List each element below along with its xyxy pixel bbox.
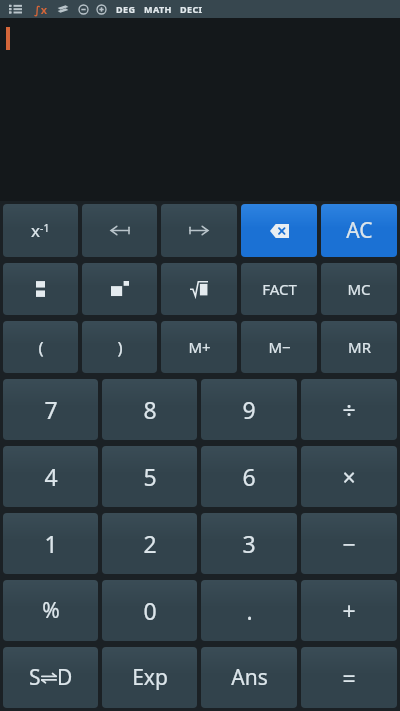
staticText: Ans (231, 663, 268, 692)
staticText: × (342, 461, 356, 492)
button[interactable]: Ans (201, 647, 297, 708)
button[interactable]: 2 (102, 513, 197, 574)
staticText: 2 (143, 528, 157, 559)
button[interactable]: Divide (301, 379, 397, 440)
button[interactable]: 6 (201, 446, 297, 507)
button[interactable]: Swap (54, 0, 72, 18)
staticText: MATH (144, 3, 172, 15)
button[interactable]: 4 (3, 446, 98, 507)
button[interactable]: 3 (201, 513, 297, 574)
button[interactable]: DEG (115, 3, 137, 15)
staticText: M+ (188, 337, 211, 357)
button[interactable]: History (5, 0, 25, 18)
staticText: Exp (132, 663, 168, 692)
staticText: ÷ (342, 394, 356, 425)
staticText: . (246, 595, 253, 626)
staticText: 5 (143, 461, 157, 492)
button[interactable] (0, 18, 400, 201)
staticText: 6 (242, 461, 256, 492)
button[interactable]: Zoom in (93, 1, 109, 17)
staticText: 1 (44, 528, 58, 559)
button[interactable]: 1 (3, 513, 98, 574)
button[interactable]: 8 (102, 379, 197, 440)
staticText: x-1 (31, 219, 50, 242)
button[interactable]: x⁻¹ (3, 204, 78, 257)
button[interactable]: AC (321, 204, 397, 257)
button[interactable]: FACT (241, 263, 317, 315)
button[interactable]: Root (161, 263, 237, 315)
button[interactable]: Functions (32, 0, 50, 18)
button[interactable]: Minus (301, 513, 397, 574)
button[interactable]: S to D (3, 647, 98, 708)
staticText: DECI (180, 3, 203, 15)
button[interactable]: ( (3, 321, 78, 373)
button[interactable]: 7 (3, 379, 98, 440)
staticText: + (342, 595, 356, 626)
button[interactable]: Right (161, 204, 237, 257)
button[interactable]: Power (82, 263, 157, 315)
button[interactable]: Left (82, 204, 157, 257)
staticText: 7 (44, 394, 58, 425)
button[interactable]: 0 (102, 580, 197, 641)
button[interactable]: 9 (201, 379, 297, 440)
button[interactable]: Equals (301, 647, 397, 708)
staticText: AC (346, 216, 373, 245)
button[interactable]: Backspace (241, 204, 317, 257)
button[interactable]: 5 (102, 446, 197, 507)
staticText: 3 (242, 528, 256, 559)
staticText: ) (117, 336, 123, 359)
button[interactable]: ) (82, 321, 157, 373)
button[interactable]: DECI (179, 3, 204, 15)
staticText: ( (38, 336, 44, 359)
staticText: 8 (143, 394, 157, 425)
staticText: 0 (143, 595, 157, 626)
staticText: 4 (44, 461, 58, 492)
button[interactable]: MC (321, 263, 397, 315)
button[interactable]: MATH (143, 3, 173, 15)
button[interactable]: M+ (161, 321, 237, 373)
button[interactable]: M- (241, 321, 317, 373)
staticText: D (57, 663, 73, 692)
staticText: % (42, 596, 60, 625)
staticText: DEG (116, 3, 136, 15)
button[interactable]: Plus (301, 580, 397, 641)
staticText: S (29, 663, 41, 692)
button[interactable]: MR (321, 321, 397, 373)
staticText: MC (347, 279, 371, 299)
staticText: MR (348, 337, 371, 357)
button[interactable]: Fraction (3, 263, 78, 315)
staticText: ∫x (34, 2, 48, 17)
button[interactable]: Multiply (301, 446, 397, 507)
button[interactable]: Decimal point (201, 580, 297, 641)
button[interactable]: Zoom out (75, 1, 91, 17)
staticText: FACT (262, 279, 297, 299)
staticText: − (342, 528, 356, 559)
button[interactable]: Exp (102, 647, 197, 708)
staticText: = (342, 662, 356, 693)
staticText: 9 (242, 394, 256, 425)
button[interactable]: Percent (3, 580, 98, 641)
staticText: M− (268, 337, 291, 357)
